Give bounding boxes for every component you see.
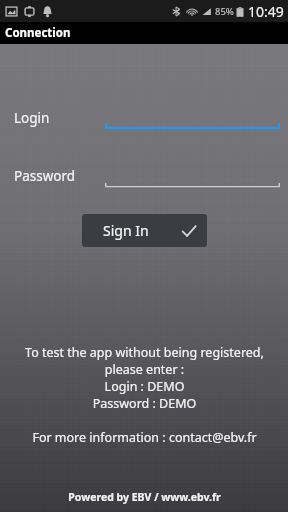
staticText: Password — [14, 167, 76, 185]
staticText: Login — [14, 109, 50, 127]
button[interactable]: Sign In — [82, 214, 207, 247]
staticText: Powered by EBV / www.ebv.fr — [68, 490, 221, 504]
staticText: Sign In — [103, 221, 149, 240]
staticText: To test the app without being registered… — [25, 344, 264, 412]
other: Sign in — [181, 223, 197, 239]
button[interactable] — [105, 164, 280, 188]
staticText: For more information : contact@ebv.fr — [32, 429, 257, 446]
staticText: Connection — [5, 25, 71, 41]
staticText: 85% — [215, 5, 234, 18]
button[interactable] — [105, 106, 280, 130]
staticText: 10:49 — [248, 2, 284, 21]
